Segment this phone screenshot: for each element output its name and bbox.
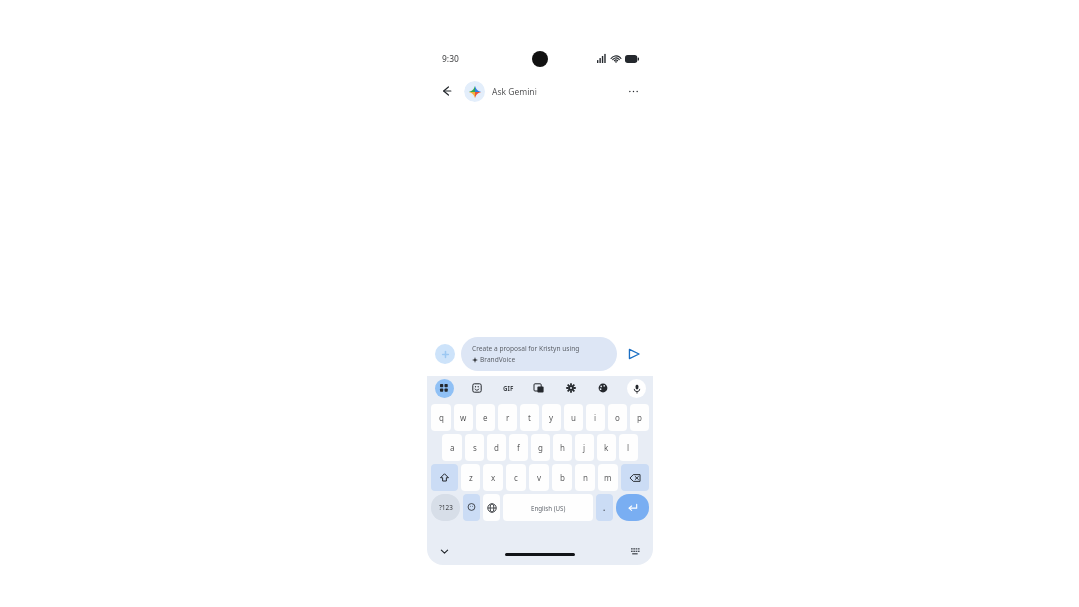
- staticText: GIF: [503, 384, 514, 392]
- button[interactable]: sticker: [467, 378, 487, 398]
- staticText: w: [460, 412, 467, 423]
- button[interactable]: Add: [435, 344, 455, 364]
- button[interactable]: s: [465, 434, 484, 461]
- button[interactable]: p: [630, 404, 649, 431]
- button[interactable]: Switch keyboard: [627, 542, 645, 560]
- button[interactable]: English (US): [503, 494, 593, 521]
- staticText: y: [549, 412, 554, 423]
- button[interactable]: Backspace: [621, 464, 649, 491]
- staticText: l: [627, 442, 630, 453]
- button[interactable]: z: [461, 464, 480, 491]
- staticText: BrandVoice: [480, 355, 516, 364]
- button[interactable]: Emoji: [463, 494, 480, 521]
- button[interactable]: j: [575, 434, 594, 461]
- button[interactable]: n: [575, 464, 595, 491]
- button[interactable]: c: [506, 464, 526, 491]
- staticText: j: [583, 442, 586, 453]
- button[interactable]: e: [476, 404, 495, 431]
- button[interactable]: translate: [529, 378, 549, 398]
- button[interactable]: settings: [561, 378, 581, 398]
- staticText: English (US): [531, 504, 566, 512]
- button[interactable]: x: [483, 464, 503, 491]
- button[interactable]: Ask Gemini: [464, 81, 537, 102]
- staticText: r: [506, 412, 510, 423]
- staticText: h: [560, 442, 565, 453]
- staticText: 9:30: [442, 53, 459, 65]
- staticText: .: [603, 502, 606, 513]
- button[interactable]: Change language: [483, 494, 500, 521]
- button[interactable]: Send: [623, 343, 645, 365]
- staticText: f: [517, 442, 520, 453]
- staticText: d: [494, 442, 499, 453]
- button[interactable]: Hide keyboard: [435, 542, 453, 560]
- staticText: n: [583, 472, 588, 483]
- staticText: o: [615, 412, 620, 423]
- staticText: b: [560, 472, 565, 483]
- staticText: p: [637, 412, 642, 423]
- staticText: a: [450, 442, 455, 453]
- button[interactable]: Back: [437, 81, 457, 101]
- staticText: Ask Gemini: [492, 86, 537, 98]
- staticText: e: [483, 412, 488, 423]
- button[interactable]: ?123: [431, 494, 460, 521]
- button[interactable]: More options: [623, 81, 643, 101]
- button[interactable]: r: [498, 404, 517, 431]
- button[interactable]: y: [542, 404, 561, 431]
- button[interactable]: l: [619, 434, 638, 461]
- staticText: c: [514, 472, 518, 483]
- button[interactable]: Enter: [616, 494, 649, 521]
- button[interactable]: .: [596, 494, 613, 521]
- staticText: i: [594, 412, 597, 423]
- button[interactable]: Voice input: [627, 379, 646, 398]
- staticText: v: [537, 472, 542, 483]
- staticText: ?123: [439, 503, 453, 512]
- button[interactable]: v: [529, 464, 549, 491]
- button[interactable]: i: [586, 404, 605, 431]
- button[interactable]: palette: [593, 378, 613, 398]
- button[interactable]: o: [608, 404, 627, 431]
- button[interactable]: m: [598, 464, 618, 491]
- button[interactable]: b: [552, 464, 572, 491]
- button[interactable]: gif: [498, 378, 518, 398]
- button[interactable]: Shift: [431, 464, 458, 491]
- button[interactable]: h: [553, 434, 572, 461]
- button[interactable]: u: [564, 404, 583, 431]
- staticText: Create a proposal for Kristyn using: [472, 344, 580, 353]
- staticText: u: [571, 412, 576, 423]
- button[interactable]: App grid: [435, 379, 454, 398]
- staticText: q: [439, 412, 444, 423]
- button[interactable]: w: [454, 404, 473, 431]
- staticText: z: [469, 472, 473, 483]
- button[interactable]: Create a proposal for Kristyn using: [461, 337, 617, 371]
- staticText: k: [604, 442, 609, 453]
- button[interactable]: t: [520, 404, 539, 431]
- button[interactable]: a: [442, 434, 462, 461]
- staticText: g: [538, 442, 543, 453]
- button[interactable]: k: [597, 434, 616, 461]
- staticText: m: [604, 472, 612, 483]
- button[interactable]: q: [431, 404, 451, 431]
- button[interactable]: g: [531, 434, 550, 461]
- button[interactable]: d: [487, 434, 506, 461]
- button[interactable]: f: [509, 434, 528, 461]
- staticText: t: [528, 412, 531, 423]
- staticText: s: [473, 442, 477, 453]
- staticText: x: [491, 472, 496, 483]
